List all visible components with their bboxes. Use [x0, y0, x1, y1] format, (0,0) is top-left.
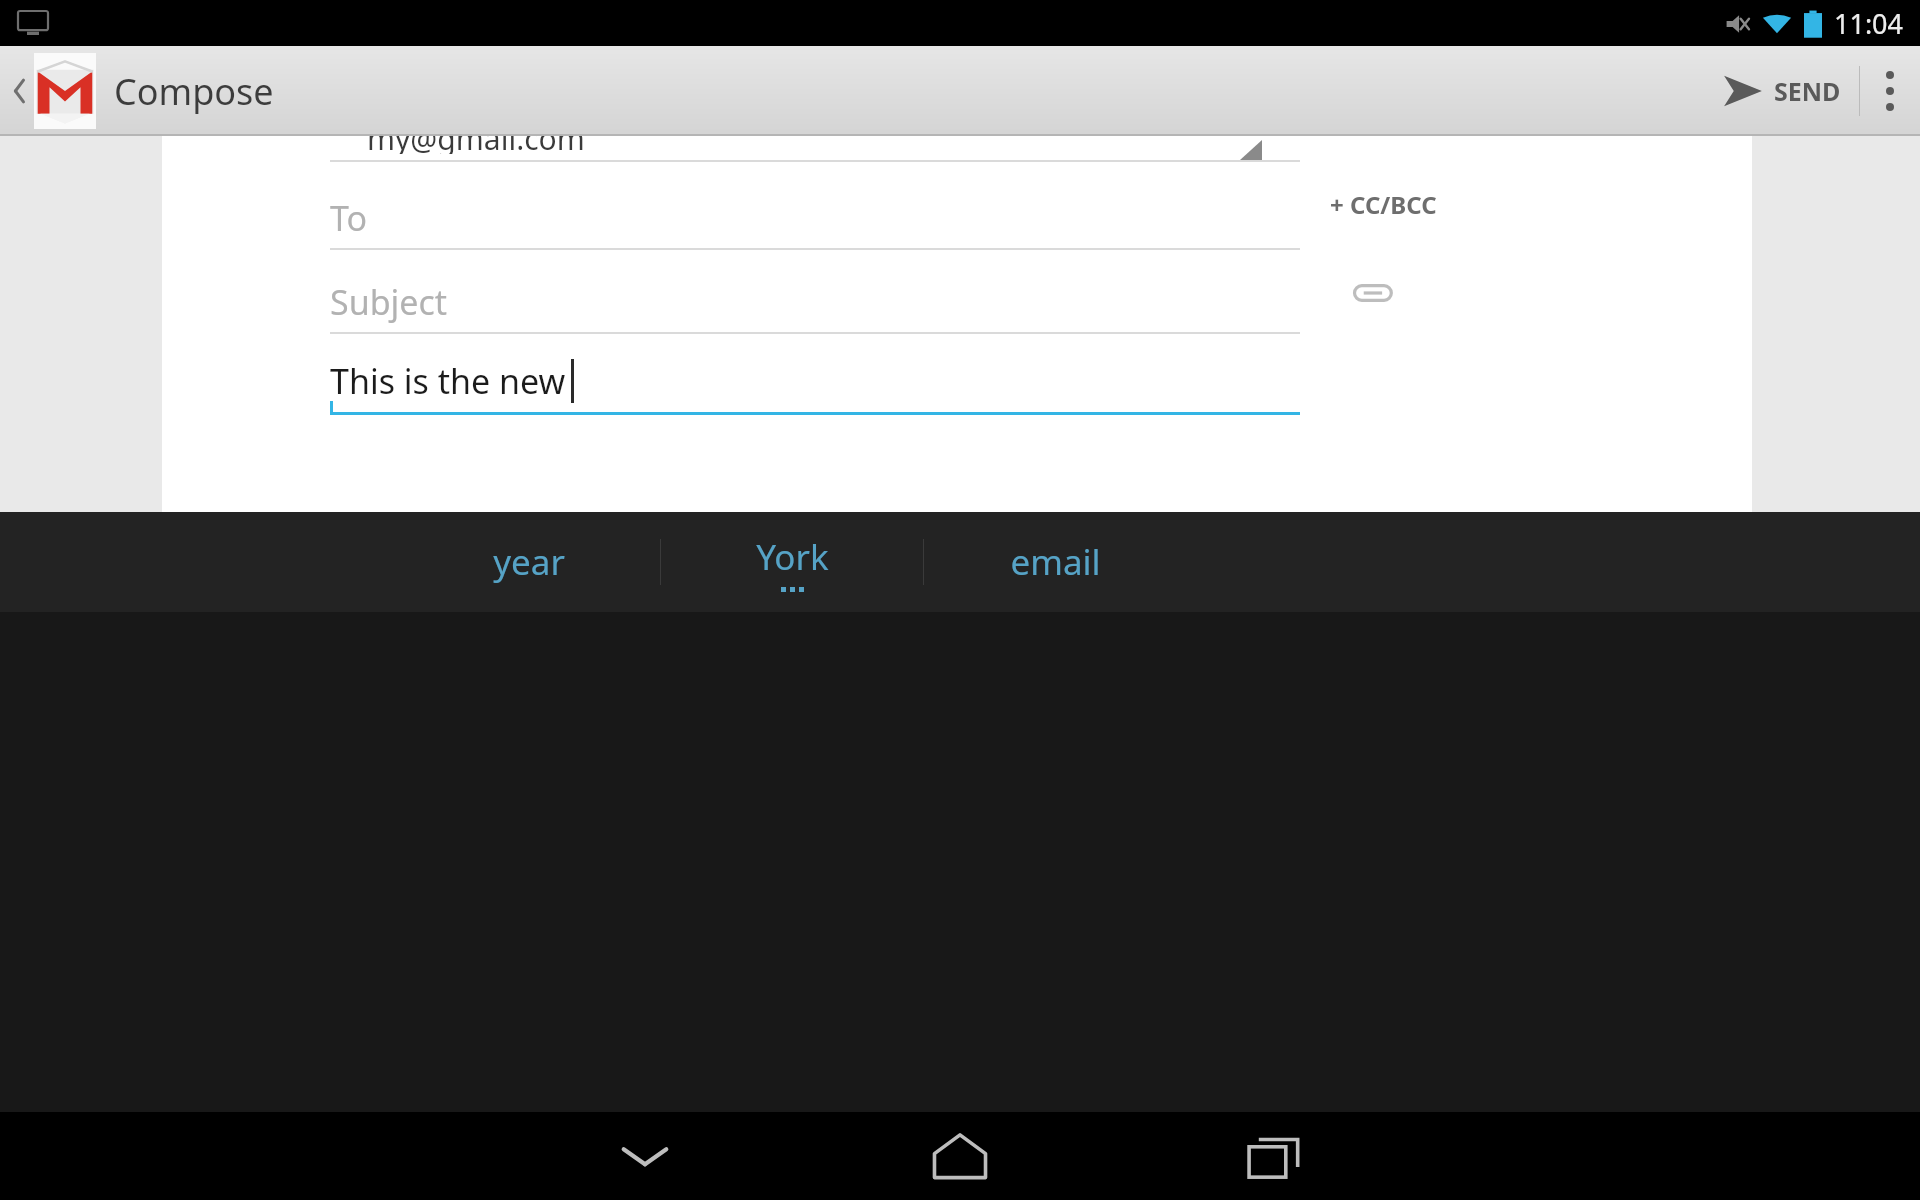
- button[interactable]: my@gmail.com: [367, 118, 1267, 154]
- staticText: SEND: [1774, 74, 1841, 108]
- button[interactable]: r: [533, 1114, 695, 1200]
- button[interactable]: More options: [1860, 46, 1920, 136]
- staticText: r: [606, 1143, 623, 1197]
- button[interactable]: i: [1233, 1114, 1395, 1200]
- staticText: York: [756, 533, 829, 581]
- button[interactable]: Attach file: [1344, 270, 1400, 316]
- staticText: Subject: [330, 279, 448, 325]
- button[interactable]: York: [661, 512, 923, 612]
- button[interactable]: This is the new: [330, 350, 1300, 412]
- staticText: email: [1010, 538, 1101, 586]
- button[interactable]: + CC/BCC: [1322, 180, 1445, 229]
- staticText: To: [330, 195, 368, 241]
- staticText: This is the new: [330, 358, 566, 404]
- button[interactable]: year: [398, 512, 660, 612]
- staticText: + CC/BCC: [1330, 188, 1437, 221]
- button[interactable]: Subject: [330, 272, 1300, 332]
- staticText: Compose: [114, 67, 274, 116]
- button[interactable]: Hide keyboard: [570, 1112, 720, 1200]
- button[interactable]: email: [924, 512, 1186, 612]
- staticText: my@gmail.com: [367, 118, 585, 154]
- staticText: year: [493, 538, 565, 586]
- button[interactable]: Home: [885, 1112, 1035, 1200]
- staticText: y: [954, 1143, 975, 1197]
- button[interactable]: y: [883, 1114, 1045, 1200]
- staticText: 11:04: [1834, 5, 1904, 42]
- button[interactable]: SEND: [1704, 46, 1859, 136]
- button[interactable]: Recent apps: [1200, 1112, 1350, 1200]
- button[interactable]: To: [330, 188, 1300, 248]
- button[interactable]: Compose: [0, 46, 286, 136]
